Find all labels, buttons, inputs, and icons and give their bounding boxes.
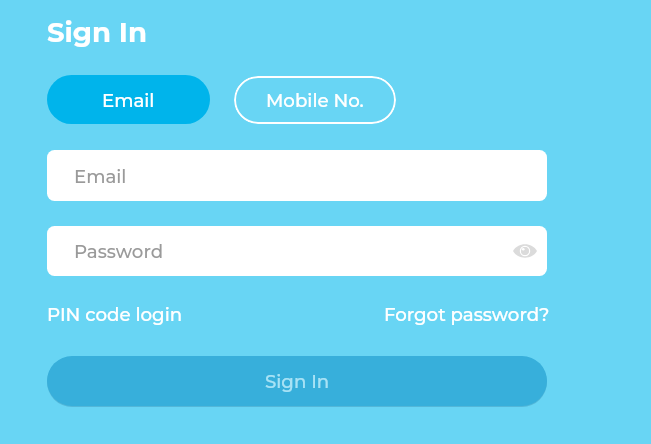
button[interactable]: Email xyxy=(47,150,547,201)
button[interactable]: Sign In xyxy=(47,356,547,406)
staticText: Forgot password? xyxy=(384,303,550,325)
button[interactable]: Mobile No. xyxy=(234,76,396,124)
button[interactable]: Forgot password? xyxy=(384,303,550,325)
staticText: Email xyxy=(102,89,155,111)
staticText: Mobile No. xyxy=(266,89,364,111)
button[interactable]: Email xyxy=(47,75,210,124)
button[interactable]: Show password xyxy=(505,231,544,270)
staticText: PIN code login xyxy=(47,303,183,325)
staticText: Sign In xyxy=(265,370,330,392)
staticText: Password xyxy=(74,240,164,262)
button[interactable]: Password xyxy=(47,226,547,276)
button[interactable]: PIN code login xyxy=(47,303,183,325)
staticText: Sign In xyxy=(47,15,147,49)
staticText: Email xyxy=(74,165,127,187)
